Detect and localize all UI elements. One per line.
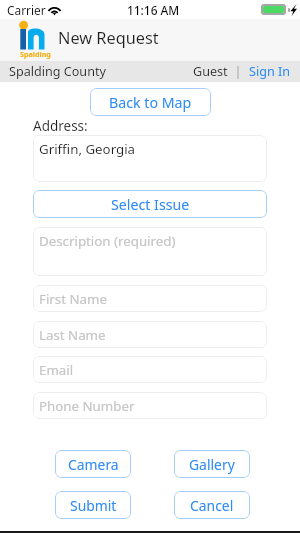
staticText: Spalding <box>20 49 51 59</box>
staticText: Gallery <box>189 455 235 474</box>
staticText: Back to Map <box>109 93 192 112</box>
staticText: Last Name <box>39 326 106 344</box>
button[interactable]: Griffin, Georgia <box>33 135 267 182</box>
button[interactable]: Last Name <box>33 321 267 348</box>
staticText: Sign In <box>249 63 291 80</box>
button[interactable]: Email <box>33 356 267 383</box>
staticText: Submit <box>70 496 117 515</box>
button[interactable]: Select Issue <box>33 190 267 218</box>
staticText: Phone Number <box>39 397 135 415</box>
staticText: Spalding County <box>9 63 106 80</box>
button[interactable]: Cancel <box>174 491 250 519</box>
staticText: Select Issue <box>111 195 190 214</box>
button[interactable]: Phone Number <box>33 392 267 419</box>
staticText: First Name <box>39 290 107 308</box>
button[interactable]: Description (required) <box>33 227 267 276</box>
button[interactable]: Back to Map <box>90 88 211 116</box>
staticText: Description (required) <box>39 232 176 250</box>
staticText: Carrier <box>7 2 46 18</box>
button[interactable]: Gallery <box>174 450 250 478</box>
staticText: | <box>228 63 249 80</box>
staticText: Guest <box>193 63 228 80</box>
staticText: 11:16 AM <box>127 2 180 18</box>
button[interactable]: Sign In <box>249 63 291 80</box>
button[interactable]: Submit <box>55 491 131 519</box>
staticText: Griffin, Georgia <box>39 140 136 158</box>
button[interactable]: First Name <box>33 285 267 312</box>
staticText: New Request <box>58 27 159 49</box>
staticText: Camera <box>68 455 119 474</box>
staticText: Email <box>39 361 74 379</box>
staticText: Address: <box>33 117 88 135</box>
button[interactable]: Camera <box>55 450 131 478</box>
staticText: Cancel <box>190 496 234 515</box>
